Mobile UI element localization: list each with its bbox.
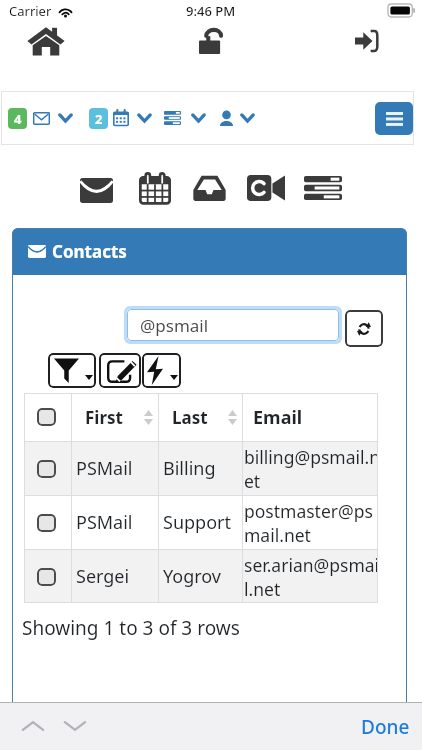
staticText: PSMail [76,456,133,481]
button[interactable]: Meetings [246,174,286,202]
staticText: 4 [14,110,22,128]
button[interactable]: Filter [48,353,96,388]
button[interactable]: Mail [78,176,114,204]
button[interactable]: Menu [375,102,413,135]
button[interactable]: Select [24,496,378,549]
staticText: Billing [163,456,216,481]
staticText: ser.arian@psmai [244,553,378,577]
staticText: Done [361,714,410,740]
button[interactable]: Calendar [137,172,173,204]
button[interactable]: Select [24,442,378,495]
staticText: Last [172,406,208,429]
staticText: 9:46 PM [186,2,236,20]
button[interactable]: Select [37,408,56,426]
staticText: Sergei [76,564,130,589]
button[interactable]: Select [37,514,56,532]
button[interactable]: Previous [16,709,50,743]
button[interactable]: Sign out [344,22,388,60]
staticText: First [85,406,123,429]
button[interactable]: Tasks [303,175,343,201]
staticText: Carrier [9,2,52,20]
staticText: Support [163,510,231,535]
button[interactable]: Home [24,22,68,60]
staticText: Email [253,405,303,430]
button[interactable]: Edit [99,353,141,388]
staticText: l.net [244,577,281,601]
staticText: et [244,469,261,493]
staticText: postmaster@ps [244,499,373,523]
staticText: PSMail [76,510,133,535]
staticText: @psmail [140,314,209,337]
button[interactable]: @psmail [127,309,339,341]
button[interactable]: Select [37,568,56,586]
staticText: Contacts [52,240,127,263]
button[interactable]: Refresh [345,310,383,347]
staticText: mail.net [244,523,311,547]
staticText: 2 [95,110,103,128]
button[interactable]: Inbox [191,174,227,202]
button[interactable]: Contacts [12,228,407,275]
button[interactable] [220,91,254,145]
staticText: Showing 1 to 3 of 3 rows [22,615,240,641]
button[interactable]: Next [58,709,92,743]
button[interactable]: 4 [8,91,72,145]
button[interactable]: 2 [89,91,151,145]
staticText: Yogrov [163,564,221,589]
button[interactable]: Select [37,460,56,478]
button[interactable]: Actions [142,353,181,388]
button[interactable]: Unlock [189,22,233,60]
button[interactable] [164,91,205,145]
staticText: billing@psmail.n [244,445,378,469]
button[interactable]: Done [349,706,422,748]
button[interactable]: Select [24,550,378,603]
